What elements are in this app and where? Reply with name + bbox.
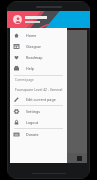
button[interactable]: Help xyxy=(10,63,67,74)
staticText: Edit current page xyxy=(26,97,56,102)
staticText: Foursquare Level 42 - General Discussion… xyxy=(15,87,65,92)
staticText: Roadmap xyxy=(26,55,43,60)
staticText: Current page xyxy=(15,78,34,82)
staticText: Settings xyxy=(26,109,40,114)
staticText: Logout xyxy=(26,120,39,125)
staticText: Glasgow xyxy=(26,44,41,49)
button[interactable] xyxy=(10,11,67,28)
button[interactable]: Edit current page xyxy=(10,94,67,105)
button[interactable]: Donate xyxy=(10,129,67,140)
button[interactable]: Home xyxy=(10,30,67,41)
staticText: Donate xyxy=(26,132,39,137)
button[interactable]: Settings xyxy=(10,106,67,117)
staticText: Help xyxy=(26,66,34,71)
button[interactable]: Foursquare Level 42 - General Discussion… xyxy=(10,84,67,94)
button[interactable]: Roadmap xyxy=(10,52,67,63)
staticText: Home xyxy=(26,33,37,38)
button[interactable]: Logout xyxy=(10,117,67,128)
button[interactable]: Glasgow xyxy=(10,41,67,52)
